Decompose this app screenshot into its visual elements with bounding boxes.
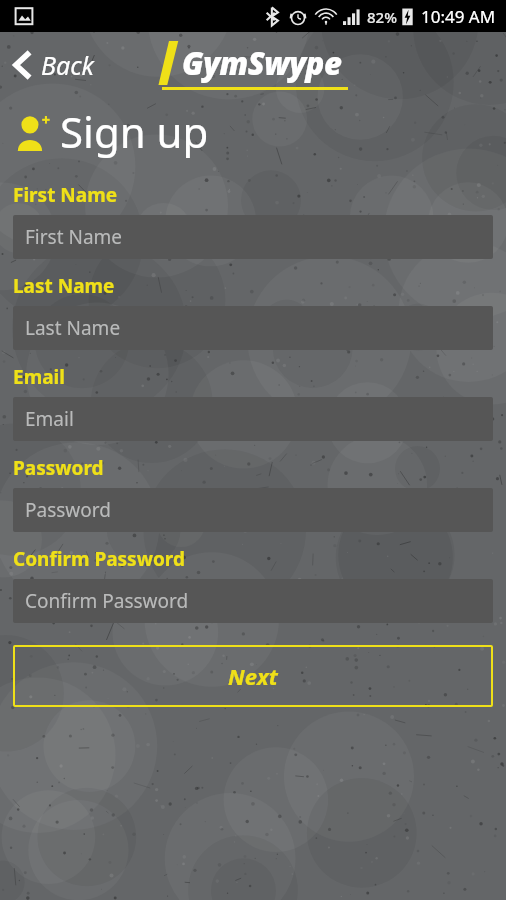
staticText: Password (25, 497, 111, 523)
button[interactable]: Back (0, 40, 108, 90)
staticText: GymSwype (182, 42, 342, 84)
staticText: First Name (13, 182, 118, 208)
staticText: Email (25, 406, 74, 432)
staticText: First Name (25, 224, 123, 250)
staticText: Last Name (25, 315, 121, 341)
staticText: Email (13, 364, 65, 390)
staticText: Back (41, 48, 94, 82)
button[interactable]: Confirm Password (13, 579, 493, 623)
button[interactable]: First Name (13, 215, 493, 259)
staticText: 10:49 AM (421, 5, 496, 28)
button[interactable]: Password (13, 488, 493, 532)
staticText: Confirm Password (13, 546, 185, 572)
button[interactable]: Email (13, 397, 493, 441)
staticText: Password (13, 455, 104, 481)
button[interactable]: Last Name (13, 306, 493, 350)
staticText: 82% (367, 7, 397, 27)
button[interactable]: Next (13, 645, 493, 707)
staticText: Next (228, 661, 278, 691)
staticText: Confirm Password (25, 588, 189, 614)
staticText: Sign up (60, 103, 209, 160)
staticText: Last Name (13, 273, 115, 299)
